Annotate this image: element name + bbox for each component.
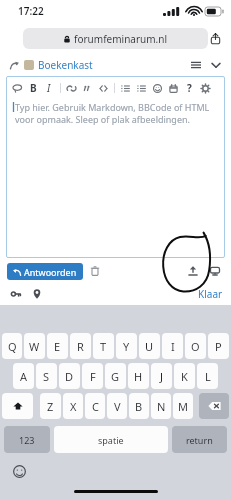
button[interactable]: Location [29, 286, 45, 302]
staticText: S [43, 369, 50, 384]
staticText: X [70, 399, 77, 414]
staticText: forumfeminarum.nl [74, 32, 168, 46]
staticText: D [65, 369, 74, 384]
staticText: G [111, 369, 120, 384]
button[interactable]: Reply [7, 58, 21, 72]
button[interactable]: Link [63, 78, 79, 98]
button[interactable]: W [24, 333, 45, 359]
button[interactable]: O [185, 333, 206, 359]
button[interactable]: X [63, 393, 83, 419]
button[interactable]: Delete [86, 262, 104, 280]
staticText: 123 [19, 434, 35, 446]
staticText: B [135, 399, 143, 414]
button[interactable]: C [85, 393, 105, 419]
button[interactable]: M [173, 393, 193, 419]
staticText: K [181, 369, 188, 384]
staticText: I [47, 81, 51, 95]
staticText: M [178, 399, 188, 414]
button[interactable]: B [25, 78, 41, 98]
button[interactable]: I [41, 78, 57, 98]
button[interactable]: T [93, 333, 114, 359]
button[interactable]: Q [2, 333, 22, 359]
button[interactable]: Z [40, 393, 61, 419]
button[interactable]: Quote [9, 78, 25, 98]
button[interactable]: I [162, 333, 183, 359]
staticText: O [191, 339, 200, 354]
button[interactable]: return [172, 426, 227, 453]
button[interactable]: ? [181, 78, 197, 98]
button[interactable]: Settings [197, 78, 213, 98]
button[interactable]: N [151, 393, 171, 419]
button[interactable]: K [174, 363, 195, 389]
button[interactable]: D [59, 363, 80, 389]
staticText: H [134, 369, 143, 384]
staticText: P [215, 339, 222, 354]
staticText: J [160, 369, 164, 384]
button[interactable]: 123 [4, 426, 50, 453]
button[interactable]: Backspace [199, 393, 229, 419]
staticText: L [205, 369, 211, 384]
staticText: C [92, 399, 99, 414]
button[interactable]: L [197, 363, 218, 389]
button[interactable]: E [47, 333, 68, 359]
staticText: spatie [98, 434, 124, 446]
button[interactable]: Upload image [184, 263, 202, 279]
button[interactable]: Passwords [8, 286, 24, 302]
staticText: return [186, 434, 213, 446]
button[interactable]: B [129, 393, 149, 419]
button[interactable]: Menu [188, 57, 204, 73]
staticText: Z [47, 399, 54, 414]
button[interactable]: forumfeminarum.nl [23, 28, 208, 49]
staticText: W [29, 339, 40, 354]
button[interactable]: F [82, 363, 103, 389]
staticText: N [157, 399, 166, 414]
staticText: R [77, 339, 84, 354]
button[interactable]: Shift [2, 393, 33, 419]
button[interactable]: U [139, 333, 160, 359]
staticText: Y [123, 339, 130, 354]
staticText: U [145, 339, 154, 354]
staticText: ? [187, 81, 192, 95]
button[interactable]: Numbered list [133, 78, 149, 98]
button[interactable]: Emoji keyboard [10, 462, 28, 480]
button[interactable]: Boekenkast [38, 58, 93, 72]
button[interactable]: Preview [206, 263, 224, 279]
button[interactable]: Y [116, 333, 137, 359]
staticText: 17:22 [18, 4, 44, 18]
button[interactable]: V [107, 393, 127, 419]
staticText: Typ hier. Gebruik Markdown, BBCode of HT… [15, 101, 216, 126]
button[interactable]: Bulleted list [117, 78, 133, 98]
button[interactable]: R [70, 333, 91, 359]
button[interactable]: Calendar [165, 78, 181, 98]
button[interactable]: Share [207, 30, 223, 46]
staticText: E [54, 339, 61, 354]
button[interactable]: J [151, 363, 172, 389]
button[interactable]: Antwoorden [13, 263, 77, 280]
button[interactable]: P [208, 333, 229, 359]
button[interactable]: Collapse [208, 57, 224, 73]
button[interactable]: S [36, 363, 57, 389]
staticText: Antwoorden [24, 266, 77, 278]
button[interactable]: Klaar [198, 287, 223, 301]
staticText: A [20, 369, 28, 384]
staticText: V [114, 399, 121, 414]
staticText: B [30, 81, 37, 95]
staticText: Q [8, 339, 17, 354]
button[interactable]: spatie [54, 426, 168, 453]
button[interactable]: H [128, 363, 149, 389]
staticText: F [90, 369, 96, 384]
staticText: I [171, 339, 175, 354]
button[interactable]: G [105, 363, 126, 389]
button[interactable]: Code [95, 78, 111, 98]
button[interactable]: Emoji [149, 78, 165, 98]
button[interactable]: Blockquote [79, 78, 95, 98]
button[interactable]: A [13, 363, 34, 389]
staticText: T [100, 339, 107, 354]
